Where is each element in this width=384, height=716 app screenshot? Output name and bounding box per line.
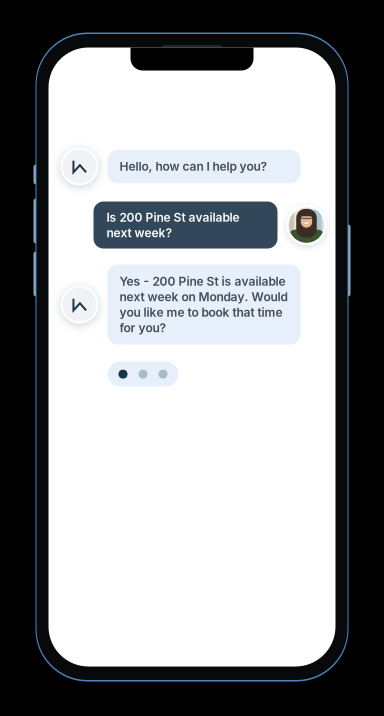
staticText: Hello, how can I help you?	[119, 159, 267, 174]
button[interactable]: Yes - 200 Pine St is available next week…	[107, 264, 300, 345]
button[interactable]: Hello, how can I help you?	[107, 150, 300, 183]
staticText: Is 200 Pine St available next week?	[106, 210, 239, 240]
button[interactable]: Is 200 Pine St available next week?	[93, 201, 277, 248]
staticText: Yes - 200 Pine St is available next week…	[119, 274, 287, 335]
